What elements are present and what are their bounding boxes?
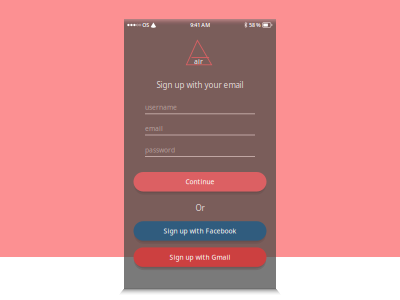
staticText: air	[194, 57, 203, 66]
staticText: Sign up with Gmail	[169, 253, 230, 262]
staticText: Or	[195, 202, 204, 213]
button[interactable]: Continue	[133, 172, 266, 195]
staticText: 58 %	[249, 21, 261, 29]
staticText: password	[145, 145, 175, 154]
staticText: 9:41 AM	[190, 21, 210, 29]
staticText: Sign up with your email	[156, 80, 243, 90]
button[interactable]: email	[145, 126, 255, 135]
button[interactable]: Sign up with Gmail	[133, 247, 266, 271]
staticText: OS	[142, 21, 149, 29]
button[interactable]: password	[145, 147, 255, 157]
staticText: email	[145, 124, 163, 133]
button[interactable]: username	[145, 105, 255, 114]
staticText: username	[145, 103, 177, 112]
staticText: Sign up with Facebook	[163, 226, 236, 235]
button[interactable]: Sign up with Facebook	[133, 221, 266, 245]
staticText: Continue	[185, 177, 214, 186]
